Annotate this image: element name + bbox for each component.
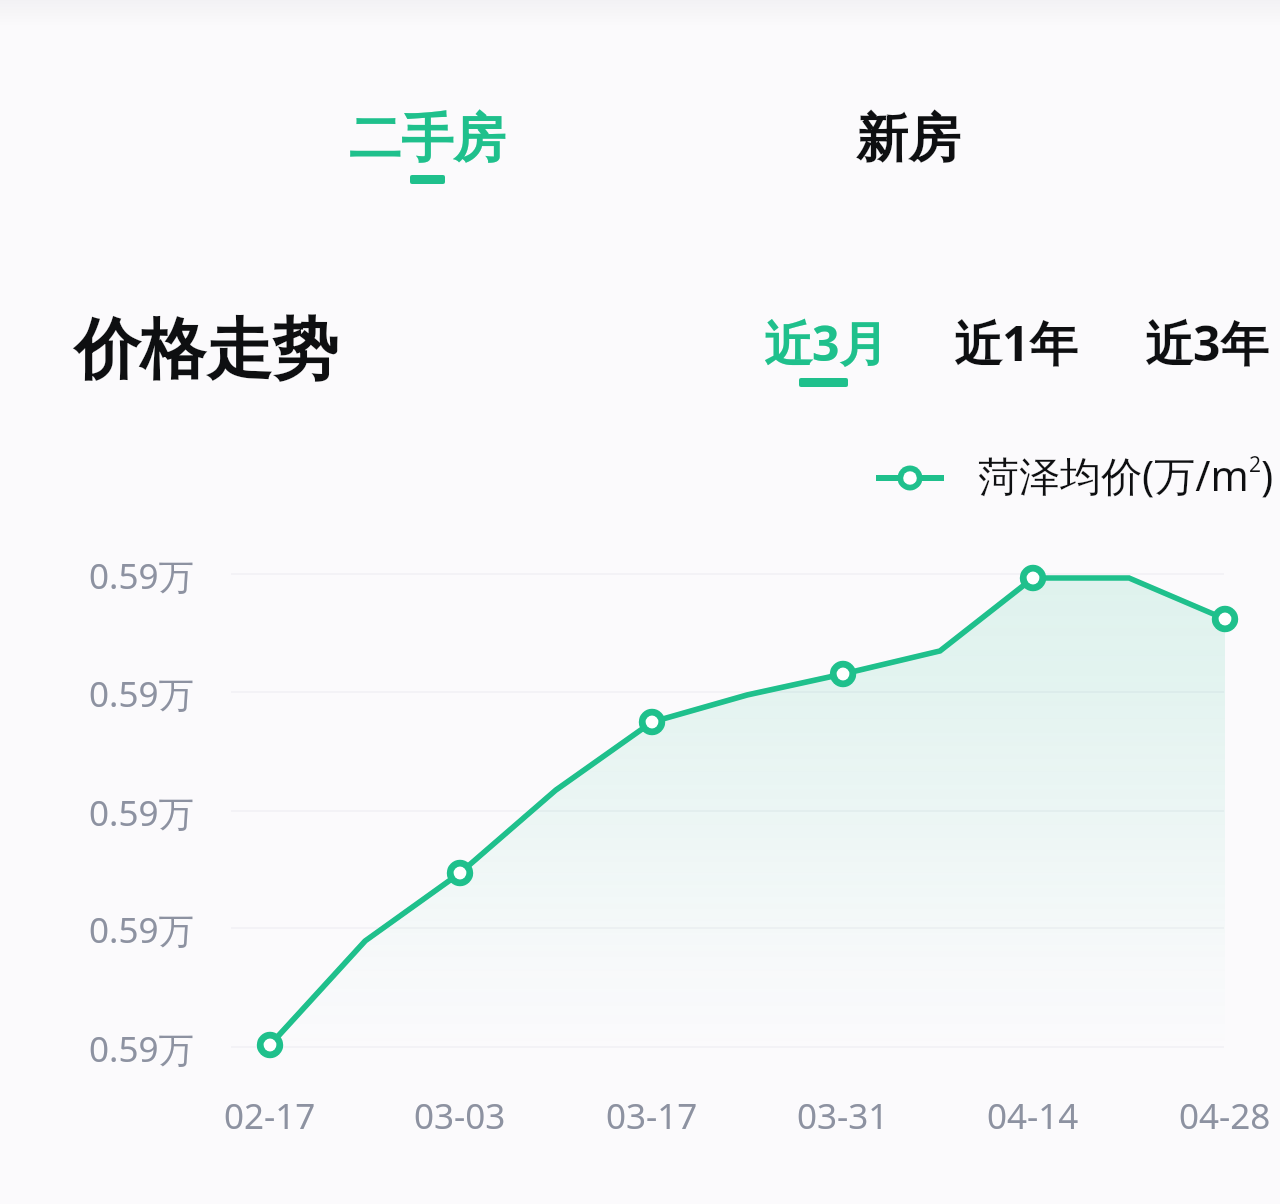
staticText: 近1年 <box>954 310 1078 376</box>
staticText: 03-31 <box>797 1092 889 1140</box>
staticText: 0.59万 <box>89 670 194 718</box>
other: 菏泽均价图例 <box>876 458 944 498</box>
staticText: 菏泽均价(万/m2) <box>978 447 1274 503</box>
staticText: 04-28 <box>1179 1092 1271 1140</box>
button[interactable]: 近3月 <box>746 310 906 410</box>
staticText: 03-17 <box>606 1092 698 1140</box>
staticText: 近3月 <box>764 310 888 376</box>
staticText: 近3年 <box>1145 310 1269 376</box>
button[interactable]: 二手房 <box>317 106 537 216</box>
staticText: 04-14 <box>987 1092 1079 1140</box>
staticText: 03-03 <box>414 1092 506 1140</box>
button[interactable]: 近3年 <box>1127 310 1280 410</box>
staticText: 新房 <box>856 106 960 172</box>
staticText: 0.59万 <box>89 789 194 837</box>
button[interactable]: 新房 <box>798 106 1018 216</box>
staticText: 02-17 <box>224 1092 316 1140</box>
button[interactable]: 近1年 <box>936 310 1096 410</box>
staticText: 0.59万 <box>89 552 194 600</box>
staticText: 0.59万 <box>89 1025 194 1073</box>
staticText: 二手房 <box>349 106 505 172</box>
other: 菏泽二手房近3月价格走势折线图 <box>0 0 1280 1204</box>
staticText: 0.59万 <box>89 906 194 954</box>
button[interactable]: 菏泽均价图例 <box>866 450 1266 506</box>
staticText: 价格走势 <box>74 308 338 391</box>
